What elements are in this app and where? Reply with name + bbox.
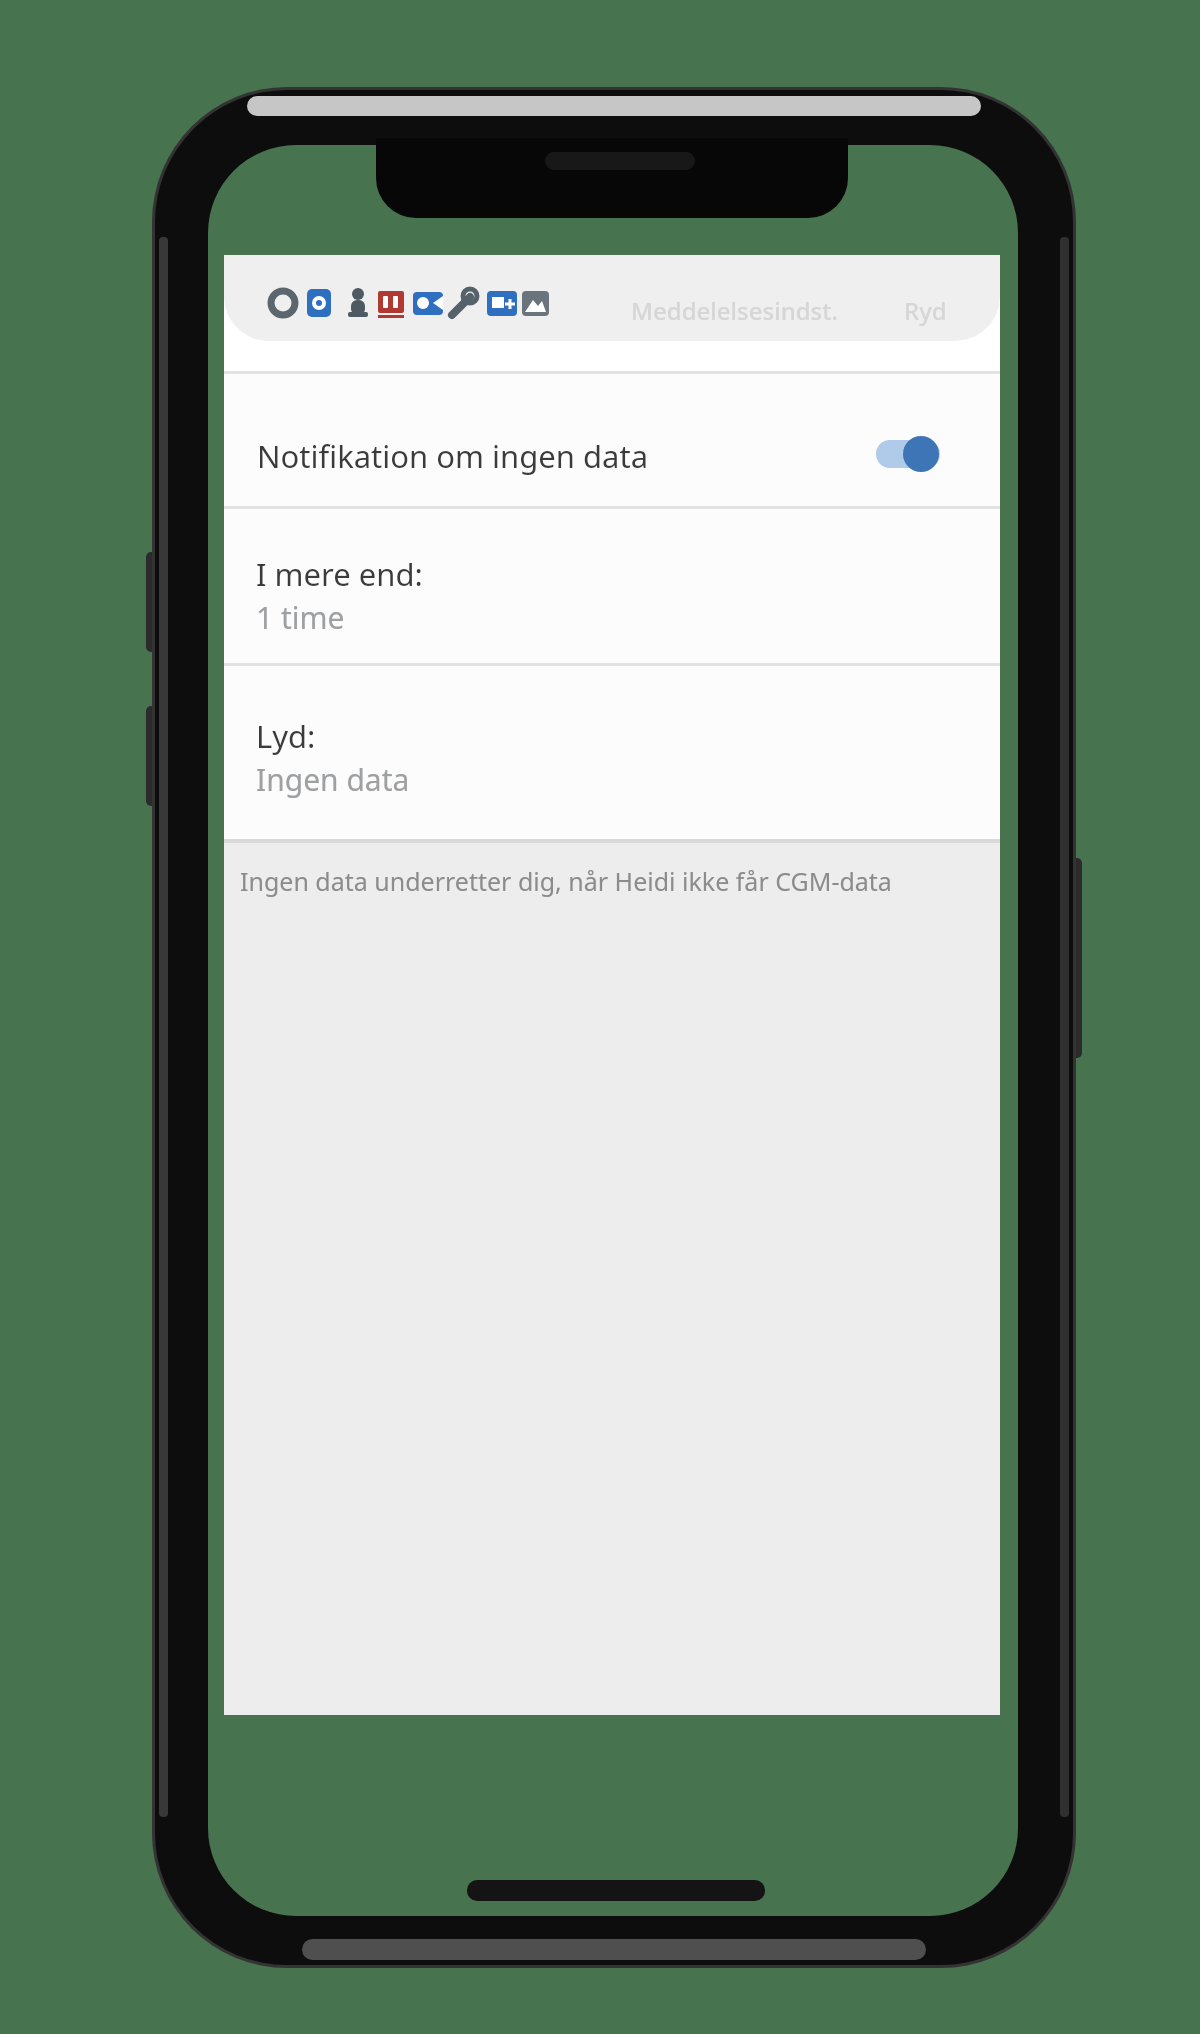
button[interactable] xyxy=(864,426,952,482)
button[interactable]: Ryd xyxy=(888,275,978,335)
staticText: Lyd: xyxy=(256,715,316,757)
staticText: 1 time xyxy=(256,597,345,638)
staticText: Ingen data underretter dig, når Heidi ik… xyxy=(240,864,892,898)
button[interactable]: Meddelelsesindst. xyxy=(224,255,1000,341)
staticText: Ryd xyxy=(904,294,947,327)
button[interactable]: Lyd: xyxy=(224,666,1000,836)
button[interactable]: Notifikation om ingen data xyxy=(224,374,1000,506)
staticText: Meddelelsesindst. xyxy=(631,294,838,327)
staticText: I mere end: xyxy=(256,553,423,595)
staticText: Ingen data xyxy=(256,759,410,800)
staticText: Notifikation om ingen data xyxy=(257,435,649,477)
button[interactable]: I mere end: xyxy=(224,509,1000,663)
